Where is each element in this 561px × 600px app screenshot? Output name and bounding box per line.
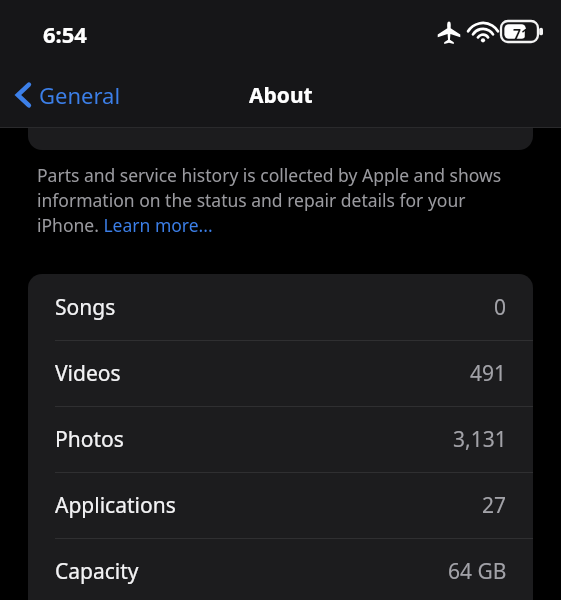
button[interactable]: Videos (28, 340, 533, 406)
button[interactable]: Applications (28, 472, 533, 538)
staticText: 27 (482, 491, 507, 520)
staticText: Photos (55, 425, 124, 454)
staticText: 64 GB (448, 557, 507, 586)
staticText: Songs (55, 293, 116, 322)
staticText: Battery (55, 98, 127, 127)
staticText: 0 (494, 293, 507, 322)
staticText: Videos (55, 359, 121, 388)
button[interactable]: Photos (28, 406, 533, 472)
button[interactable]: General (8, 74, 129, 116)
button[interactable]: Songs (28, 274, 533, 340)
button[interactable]: Capacity (28, 538, 533, 600)
staticText: Applications (55, 491, 176, 520)
button[interactable]: Battery (28, 92, 533, 150)
staticText: 3,131 (453, 425, 507, 454)
staticText: 491 (470, 359, 507, 388)
staticText: Capacity (55, 557, 139, 586)
staticText: 71 (505, 24, 537, 43)
button[interactable]: Parts and service history is collected b… (37, 163, 519, 237)
staticText: About (249, 81, 313, 110)
staticText: General (39, 80, 121, 110)
staticText: 6:54 (43, 19, 87, 49)
